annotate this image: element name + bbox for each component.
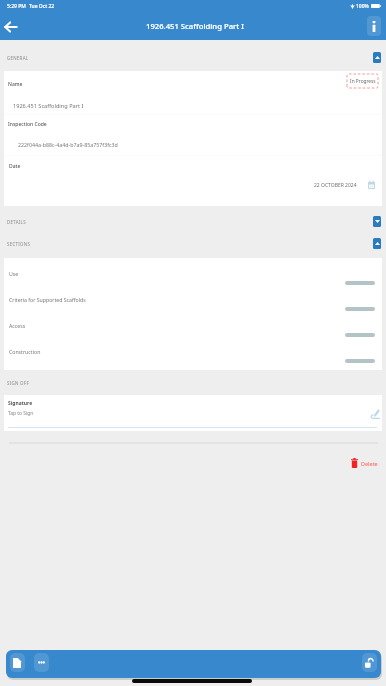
- staticText: Tue Oct 22: [29, 3, 55, 10]
- button[interactable]: Delete: [349, 455, 380, 471]
- staticText: Name: [8, 81, 23, 88]
- staticText: Criteria for Supported Scaffolds: [9, 296, 86, 303]
- staticText: Date: [9, 163, 21, 170]
- staticText: 100%: [356, 3, 369, 10]
- staticText: SIGN OFF: [7, 380, 29, 386]
- button[interactable]: Unlock: [362, 653, 377, 672]
- button[interactable]: Info: [367, 16, 381, 36]
- staticText: Signature: [8, 400, 33, 407]
- staticText: Access: [9, 322, 26, 329]
- staticText: 222f044a-b88c-4a4d-b7a9-85a757f3fc3d: [18, 141, 118, 148]
- button[interactable]: Back: [1, 17, 20, 36]
- staticText: 5:29 PM: [7, 3, 26, 10]
- staticText: 22 OCTOBER 2024: [314, 182, 357, 189]
- button[interactable]: Collapse GENERAL: [373, 52, 381, 63]
- button[interactable]: Criteria for Supported Scaffolds: [4, 288, 382, 314]
- button[interactable]: Signature: [4, 395, 382, 431]
- button[interactable]: Collapse SECTIONS: [373, 238, 381, 249]
- button[interactable]: Expand DETAILS: [373, 216, 381, 227]
- staticText: Tap to Sign: [8, 410, 34, 417]
- button[interactable]: Use: [4, 262, 382, 288]
- staticText: SECTIONS: [7, 241, 31, 247]
- staticText: GENERAL: [7, 55, 29, 61]
- staticText: DETAILS: [7, 219, 26, 225]
- staticText: In Progress: [350, 78, 376, 85]
- button[interactable]: More options: [34, 653, 49, 672]
- button[interactable]: Access: [4, 314, 382, 340]
- staticText: 1926.451 Scaffolding Part I: [146, 21, 244, 31]
- staticText: Construction: [9, 348, 41, 355]
- staticText: 1926.451 Scaffolding Part I: [13, 102, 84, 110]
- staticText: Inspection Code: [8, 121, 47, 128]
- button[interactable]: In Progress: [347, 74, 378, 88]
- button[interactable]: Export document: [10, 653, 25, 672]
- staticText: Delete: [361, 460, 378, 467]
- button[interactable]: Construction: [4, 340, 382, 366]
- staticText: Use: [9, 270, 19, 277]
